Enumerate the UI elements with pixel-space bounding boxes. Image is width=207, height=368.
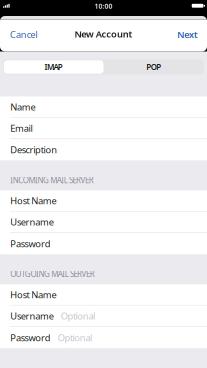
button[interactable]: Host Name xyxy=(0,190,207,212)
staticText: Password xyxy=(10,331,51,344)
staticText: Optional xyxy=(58,331,92,344)
staticText: IMAP xyxy=(44,62,63,72)
button[interactable]: Username xyxy=(0,306,207,327)
button[interactable]: Cancel xyxy=(0,21,43,47)
staticText: New Account xyxy=(74,28,132,40)
button[interactable]: Host Name xyxy=(0,284,207,306)
button[interactable]: POP xyxy=(103,59,204,74)
button[interactable]: Name xyxy=(0,96,207,118)
staticText: Host Name xyxy=(10,194,57,207)
staticText: 10:00 xyxy=(94,2,112,11)
staticText: Host Name xyxy=(10,288,57,301)
staticText: INCOMING MAIL SERVER xyxy=(10,175,94,185)
button[interactable]: Email xyxy=(0,118,207,139)
staticText: Username xyxy=(10,216,54,228)
staticText: POP xyxy=(146,62,161,72)
staticText: Name xyxy=(10,101,36,113)
staticText: Next xyxy=(177,28,198,40)
staticText: Email xyxy=(10,122,32,134)
button[interactable]: Next xyxy=(171,21,207,47)
staticText: Description xyxy=(10,144,57,156)
button[interactable]: Description xyxy=(0,139,207,160)
staticText: Username xyxy=(10,310,54,322)
staticText: Optional xyxy=(61,310,95,322)
button[interactable]: Username xyxy=(0,212,207,233)
button[interactable]: Password xyxy=(0,233,207,254)
button[interactable]: Password xyxy=(0,327,207,348)
staticText: Password xyxy=(10,237,51,250)
staticText: OUTGOING MAIL SERVER xyxy=(10,269,95,279)
staticText: Cancel xyxy=(10,28,37,40)
button[interactable]: IMAP xyxy=(3,59,103,74)
